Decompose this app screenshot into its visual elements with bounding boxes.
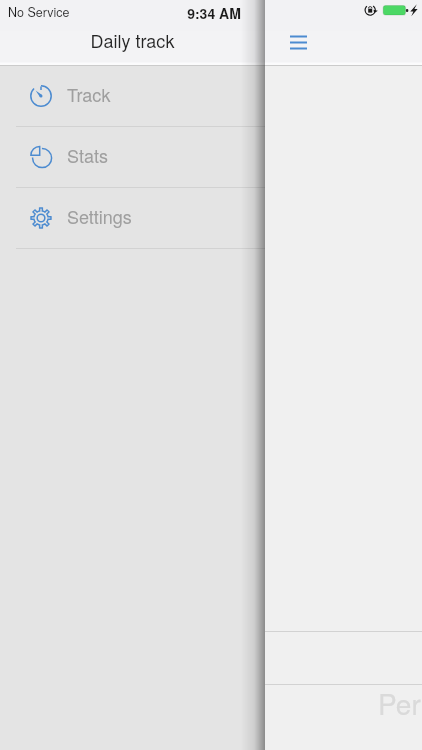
button[interactable]: Settings: [0, 188, 265, 249]
staticText: Settings: [67, 203, 132, 229]
button[interactable]: Stats: [0, 127, 265, 188]
staticText: Period: [378, 683, 422, 723]
staticText: Track: [67, 81, 111, 107]
staticText: Daily track: [0, 27, 265, 53]
staticText: Stats: [67, 142, 108, 168]
staticText: 9:34 AM: [3, 3, 422, 23]
staticText: No Service: [8, 3, 70, 21]
button[interactable]: Menu: [279, 24, 315, 52]
button[interactable]: Track: [0, 66, 265, 127]
